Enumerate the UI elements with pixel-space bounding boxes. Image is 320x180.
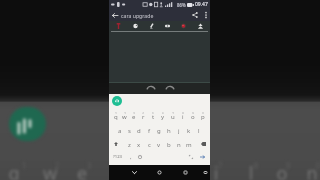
button[interactable]: Voice input bbox=[112, 96, 122, 106]
staticText: l bbox=[242, 161, 260, 180]
staticText: 1 bbox=[115, 111, 117, 114]
staticText: 09.47 bbox=[195, 1, 208, 8]
button[interactable]: c bbox=[144, 141, 154, 148]
button[interactable]: n bbox=[174, 141, 184, 148]
button[interactable]: k bbox=[184, 127, 194, 134]
button[interactable]: Back bbox=[109, 9, 121, 21]
button[interactable]: Adjust bbox=[129, 21, 142, 31]
staticText: t bbox=[152, 113, 155, 120]
button[interactable]: o bbox=[188, 113, 198, 120]
staticText: e bbox=[132, 113, 136, 120]
staticText: w bbox=[41, 161, 59, 180]
button[interactable]: t bbox=[148, 113, 158, 120]
staticText: f bbox=[148, 127, 151, 134]
button[interactable]: Record bbox=[177, 21, 190, 31]
button[interactable]: q bbox=[111, 113, 120, 120]
button[interactable]: d bbox=[134, 127, 144, 134]
button[interactable]: Draw bbox=[145, 21, 158, 31]
staticText: 6 bbox=[162, 111, 164, 114]
button[interactable]: Undo bbox=[147, 86, 155, 90]
button[interactable]: More options bbox=[201, 9, 210, 21]
button[interactable]: s bbox=[124, 127, 134, 134]
button[interactable]: h bbox=[164, 127, 174, 134]
staticText: s bbox=[128, 127, 131, 134]
staticText: 9 bbox=[192, 111, 194, 114]
staticText: 8 bbox=[182, 111, 184, 114]
button[interactable]: g bbox=[154, 127, 164, 134]
button[interactable]: l bbox=[194, 127, 204, 134]
staticText: k bbox=[187, 127, 191, 134]
button[interactable]: Screenshot bbox=[197, 166, 213, 179]
staticText: u bbox=[171, 113, 175, 120]
staticText: 3 bbox=[133, 111, 135, 114]
button[interactable]: b bbox=[164, 141, 174, 148]
button[interactable]: Symbols bbox=[111, 153, 124, 161]
staticText: 86% bbox=[177, 2, 186, 8]
staticText: 7 bbox=[172, 111, 174, 114]
button[interactable]: Share bbox=[189, 9, 201, 21]
button[interactable]: x bbox=[134, 141, 144, 148]
staticText: e bbox=[73, 161, 91, 180]
staticText: y bbox=[161, 113, 165, 120]
staticText: cara upgrade bbox=[121, 12, 154, 19]
staticText: 2 bbox=[124, 111, 126, 114]
staticText: i bbox=[182, 113, 184, 120]
staticText: v bbox=[157, 141, 161, 148]
button[interactable]: Ratio bbox=[161, 21, 174, 31]
button[interactable]: Export bbox=[194, 21, 207, 31]
staticText: c bbox=[148, 141, 151, 148]
button[interactable]: r bbox=[138, 113, 148, 120]
staticText: i bbox=[207, 161, 225, 180]
button[interactable]: Recents bbox=[177, 166, 193, 179]
staticText: n bbox=[303, 161, 320, 180]
button[interactable]: Hide keyboard bbox=[126, 166, 142, 179]
staticText: p bbox=[201, 113, 205, 120]
button[interactable]: Enter bbox=[197, 153, 208, 161]
staticText: h bbox=[167, 127, 171, 134]
button[interactable]: Text bbox=[112, 21, 125, 31]
staticText: q bbox=[114, 113, 118, 120]
button[interactable]: a bbox=[115, 127, 124, 134]
button[interactable]: Redo bbox=[166, 86, 174, 90]
staticText: w bbox=[122, 113, 127, 120]
button[interactable]: Period bbox=[187, 153, 195, 161]
staticText: d bbox=[137, 127, 141, 134]
staticText: z bbox=[128, 141, 131, 148]
button[interactable]: m bbox=[184, 141, 194, 148]
staticText: q bbox=[5, 161, 23, 180]
button[interactable]: Emoji bbox=[136, 153, 144, 161]
staticText: g bbox=[157, 127, 161, 134]
staticText: 8 bbox=[251, 160, 261, 171]
staticText: o bbox=[273, 161, 291, 180]
button[interactable]: Backspace bbox=[198, 139, 208, 148]
button[interactable]: e bbox=[129, 113, 138, 120]
staticText: o bbox=[191, 113, 195, 120]
button[interactable]: Comma bbox=[127, 153, 134, 161]
button[interactable]: w bbox=[120, 113, 129, 120]
staticText: b bbox=[167, 141, 171, 148]
button[interactable]: v bbox=[154, 141, 164, 148]
button[interactable]: y bbox=[158, 113, 168, 120]
button[interactable]: Home bbox=[151, 166, 167, 179]
button[interactable]: j bbox=[174, 127, 184, 134]
button[interactable]: i bbox=[178, 113, 188, 120]
staticText: 4 bbox=[142, 111, 144, 114]
button[interactable]: u bbox=[168, 113, 178, 120]
staticText: l bbox=[198, 127, 200, 134]
staticText: m bbox=[186, 141, 192, 148]
button[interactable]: f bbox=[144, 127, 154, 134]
staticText: n bbox=[177, 141, 181, 148]
staticText: , bbox=[130, 153, 132, 161]
button[interactable]: z bbox=[125, 141, 134, 148]
staticText: a bbox=[118, 127, 122, 134]
staticText: j bbox=[178, 127, 180, 134]
button[interactable]: p bbox=[198, 113, 208, 120]
button[interactable]: Shift bbox=[111, 139, 121, 148]
